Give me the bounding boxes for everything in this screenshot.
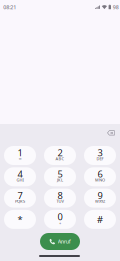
button[interactable]: 8 (44, 189, 76, 208)
staticText: 2 (57, 146, 62, 159)
staticText: JKL (57, 177, 63, 183)
staticText: 7 (17, 189, 22, 201)
staticText: 0 (57, 210, 62, 223)
button[interactable]: 7 (4, 189, 36, 208)
button[interactable]: 5 (44, 167, 76, 186)
staticText: Anruf (58, 238, 71, 245)
staticText: WXYZ (95, 199, 105, 204)
staticText: 6 (97, 168, 102, 180)
staticText: ∞ (18, 156, 21, 161)
button[interactable]: 2 (44, 146, 76, 165)
staticText: 98 (113, 4, 119, 11)
staticText: + (59, 220, 61, 225)
button[interactable]: 4 (4, 167, 36, 186)
button[interactable]: 0 (44, 210, 76, 229)
staticText: 08:21 (3, 4, 16, 11)
staticText: 5 (57, 168, 62, 180)
staticText: 9 (97, 189, 102, 201)
button[interactable]: 3 (84, 146, 116, 165)
staticText: MNO (95, 177, 105, 183)
button[interactable]: 1 (4, 146, 36, 165)
button[interactable]: 9 (84, 189, 116, 208)
button[interactable]: Delete (104, 127, 118, 139)
button[interactable]: 6 (84, 167, 116, 186)
staticText: 8 (57, 189, 62, 201)
button[interactable]: # (84, 210, 116, 229)
staticText: # (97, 213, 103, 226)
staticText: * (17, 213, 22, 226)
staticText: PQRS (15, 199, 25, 204)
staticText: TUV (56, 199, 63, 204)
staticText: 4 (17, 168, 22, 180)
staticText: DEF (96, 156, 103, 161)
staticText: 1 (17, 146, 22, 159)
staticText: GHI (16, 177, 23, 183)
button[interactable]: Anruf (40, 233, 80, 250)
staticText: 3 (97, 146, 102, 159)
staticText: ABC (55, 156, 64, 161)
button[interactable]: * (4, 210, 36, 229)
